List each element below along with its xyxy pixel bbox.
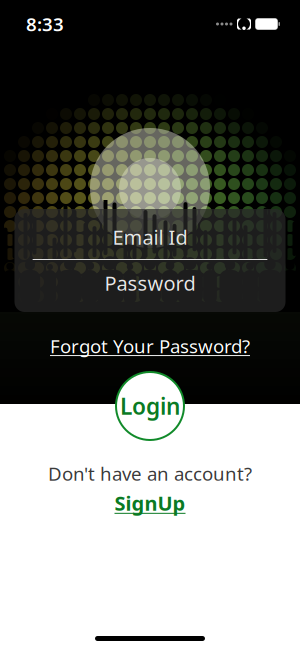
staticText: Login: [120, 391, 180, 421]
staticText: Forgot Your Password?: [50, 334, 250, 358]
button[interactable]: Password: [14, 260, 285, 306]
button[interactable]: Email Id: [14, 215, 285, 259]
staticText: Password: [104, 270, 195, 296]
staticText: SignUp: [114, 490, 185, 516]
button[interactable]: Login: [116, 372, 184, 440]
button[interactable]: Forgot Your Password?: [50, 335, 250, 357]
staticText: Don't have an account?: [48, 461, 252, 486]
staticText: 8:33: [26, 12, 64, 36]
button[interactable]: SignUp: [114, 490, 185, 516]
staticText: Email Id: [112, 224, 187, 250]
